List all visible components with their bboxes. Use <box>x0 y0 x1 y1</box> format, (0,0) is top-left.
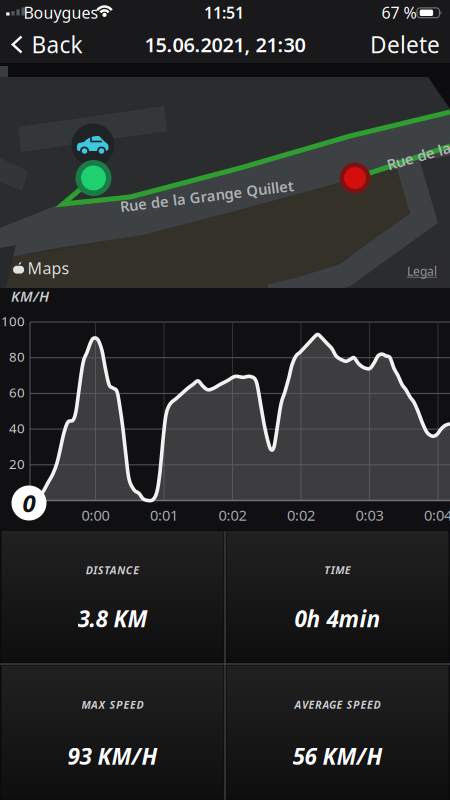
staticText: Rue de la Grange Quillet <box>119 186 294 206</box>
button[interactable]: Legal <box>407 263 437 279</box>
staticText: 80 <box>9 348 25 365</box>
staticText: 11:51 <box>204 2 244 23</box>
button[interactable]: Delete <box>370 27 440 62</box>
staticText: 60 <box>9 383 25 401</box>
staticText: KM/H <box>11 286 49 306</box>
staticText: 93 KM/H <box>67 741 157 771</box>
staticText: 0:01 <box>150 505 178 525</box>
staticText: 0h 4min <box>294 603 380 633</box>
staticText: 0:04 <box>424 505 450 525</box>
staticText: Bouygues <box>23 2 98 23</box>
staticText: 0:02 <box>218 505 246 525</box>
staticText: 20 <box>9 455 25 473</box>
staticText: Back <box>31 29 82 59</box>
staticText: 67 % <box>381 2 416 23</box>
staticText: TIME <box>324 563 351 577</box>
staticText: Delete <box>370 29 440 59</box>
staticText: Rue de la <box>386 146 450 166</box>
staticText: 0:00 <box>81 505 109 525</box>
staticText: 0:02 <box>287 505 315 525</box>
staticText: Maps <box>27 257 69 279</box>
staticText: MAX SPEED <box>81 697 143 712</box>
staticText: AVERAGE SPEED <box>294 697 380 712</box>
staticText: 15.06.2021, 21:30 <box>144 31 305 58</box>
staticText: 40 <box>9 419 25 437</box>
button[interactable]: Back <box>11 27 82 62</box>
staticText: 0 <box>22 487 35 519</box>
staticText: 100 <box>1 312 25 330</box>
staticText: 3.8 KM <box>77 603 147 633</box>
staticText: 0:03 <box>355 505 383 525</box>
staticText: Legal <box>407 263 437 279</box>
staticText: DISTANCE <box>86 563 139 577</box>
staticText: 56 KM/H <box>292 741 382 771</box>
